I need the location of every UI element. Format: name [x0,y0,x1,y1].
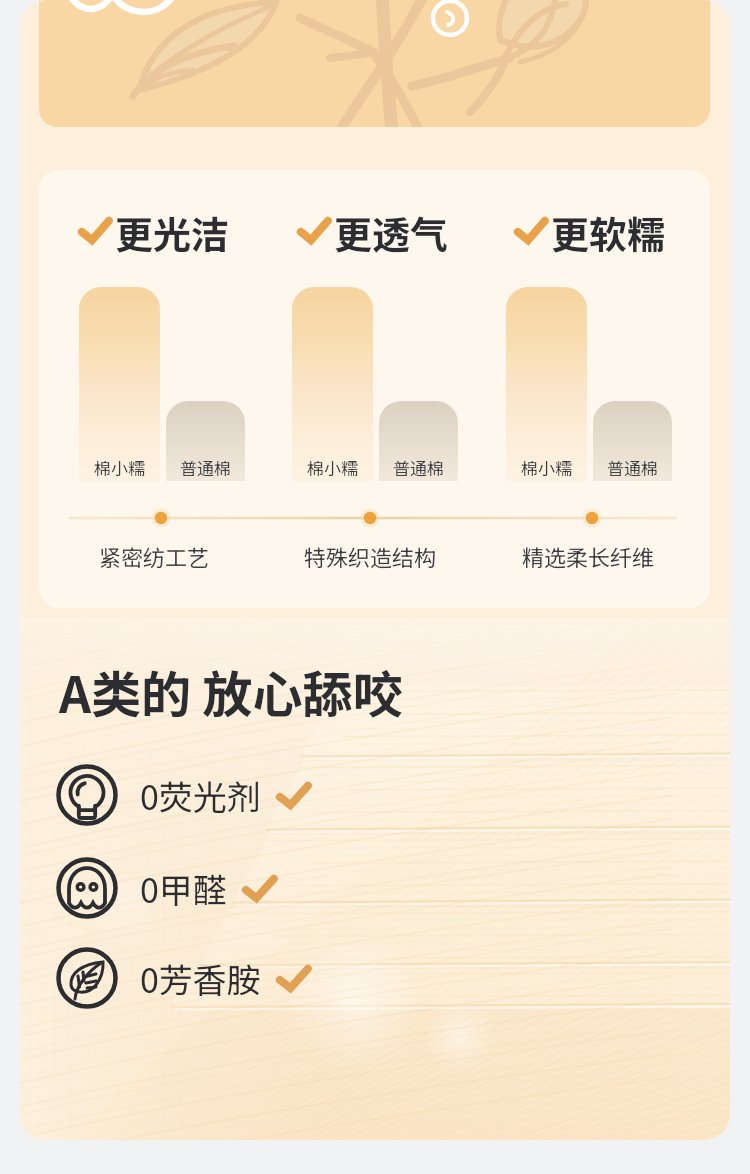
button[interactable]: 更光洁 [80,205,250,255]
staticText: 更透气 [334,205,449,255]
button[interactable]: 更透气 [299,205,469,255]
staticText: 普通棉 [607,455,658,480]
button[interactable]: 0芳香胺 [56,947,309,1009]
staticText: 棉小糯 [521,455,572,480]
button[interactable]: 0荧光剂 [56,764,309,826]
staticText: A类的 放心舔咬 [59,655,403,727]
staticText: 普通棉 [180,455,231,480]
staticText: 0荧光剂 [140,771,261,820]
staticText: 紧密纺工艺 [99,540,210,570]
staticText: 精选柔长纤维 [522,540,655,570]
staticText: 棉小糯 [94,455,145,480]
staticText: 普通棉 [393,455,444,480]
staticText: 0芳香胺 [140,954,261,1003]
button[interactable]: 更软糯 [516,205,686,255]
staticText: 特殊织造结构 [304,540,437,570]
staticText: 棉小糯 [307,455,358,480]
staticText: 更光洁 [115,205,230,255]
staticText: 更软糯 [551,205,666,255]
staticText: 0甲醛 [140,864,227,913]
button[interactable]: 0甲醛 [56,857,275,919]
